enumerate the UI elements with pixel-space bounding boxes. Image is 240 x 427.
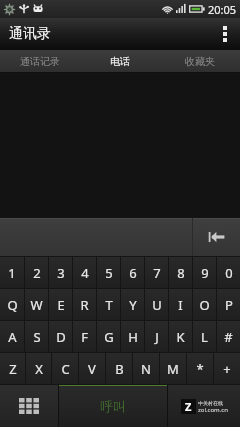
button[interactable]: B [106,353,132,384]
button[interactable]: Y [121,289,144,320]
button[interactable]: A [0,321,24,352]
staticText: 1 [8,264,16,282]
button[interactable]: X [26,353,51,384]
button[interactable]: 1 [0,257,24,288]
button[interactable]: # [217,321,240,352]
button[interactable]: 呼叫 [59,385,167,427]
button[interactable]: D [49,321,72,352]
button[interactable]: 2 [25,257,48,288]
button[interactable]: L [193,321,216,352]
staticText: S [33,328,41,346]
button[interactable]: N [133,353,159,384]
staticText: P [225,296,233,314]
button[interactable]: V [79,353,105,384]
button[interactable]: Dial pad [0,385,58,427]
staticText: Q [7,296,18,314]
staticText: 7 [153,264,161,282]
staticText: K [176,328,185,346]
button[interactable]: K [169,321,192,352]
staticText: E [57,296,65,314]
button[interactable]: M [160,353,186,384]
button[interactable]: H [121,321,144,352]
staticText: 通话记录 [20,55,60,68]
staticText: X [35,360,43,378]
button[interactable]: J [145,321,168,352]
staticText: zol.com.cn [198,406,228,414]
button[interactable]: 通话记录 [0,50,80,72]
staticText: 收藏夹 [185,55,215,68]
staticText: # [224,328,233,346]
staticText: B [115,360,124,378]
staticText: W [30,296,43,314]
staticText: 3 [57,264,65,282]
button[interactable]: P [217,289,240,320]
staticText: 呼叫 [100,398,126,414]
staticText: I [178,296,183,314]
button[interactable]: 6 [121,257,144,288]
staticText: Z [185,399,192,414]
staticText: Y [129,296,137,314]
button[interactable]: S [25,321,48,352]
staticText: G [104,328,114,346]
staticText: 4 [81,264,89,282]
button[interactable]: T [97,289,120,320]
button[interactable]: 3 [49,257,72,288]
staticText: 2 [33,264,41,282]
staticText: D [56,328,66,346]
button[interactable]: I [169,289,192,320]
staticText: F [81,328,88,346]
button[interactable]: 电话 [80,50,160,72]
staticText: J [155,328,159,346]
staticText: L [201,328,208,346]
staticText: N [141,360,151,378]
staticText: 5 [105,264,113,282]
button[interactable]: 5 [97,257,120,288]
button[interactable]: Q [0,289,24,320]
button[interactable]: Z [0,353,25,384]
staticText: M [167,360,179,378]
staticText: Z [9,360,17,378]
button[interactable]: More options [210,18,240,50]
staticText: A [8,328,17,346]
staticText: 0 [225,264,233,282]
staticText: 电话 [110,55,130,68]
staticText: 6 [129,264,137,282]
staticText: C [61,360,70,378]
button[interactable]: E [49,289,72,320]
staticText: 中关村在线 [198,400,223,406]
staticText: U [152,296,162,314]
staticText: H [128,328,138,346]
staticText: 20:05 [208,2,237,17]
button[interactable]: F [73,321,96,352]
button[interactable]: C [52,353,78,384]
staticText: + [223,360,231,378]
button[interactable]: 收藏夹 [160,50,240,72]
staticText: O [199,296,210,314]
button[interactable]: 8 [169,257,192,288]
staticText: 9 [201,264,209,282]
button[interactable]: W [25,289,48,320]
button[interactable]: O [193,289,216,320]
staticText: * [196,360,204,378]
button[interactable]: 7 [145,257,168,288]
button[interactable]: G [97,321,120,352]
button[interactable]: R [73,289,96,320]
button[interactable]: + [214,353,240,384]
staticText: R [80,296,89,314]
button[interactable]: 4 [73,257,96,288]
staticText: 8 [177,264,185,282]
button[interactable]: 0 [217,257,240,288]
staticText: 通讯录 [9,25,51,43]
button[interactable]: U [145,289,168,320]
staticText: T [105,296,113,314]
button[interactable]: * [187,353,213,384]
staticText: V [88,360,96,378]
button[interactable]: Backspace [192,218,240,256]
button[interactable]: 9 [193,257,216,288]
